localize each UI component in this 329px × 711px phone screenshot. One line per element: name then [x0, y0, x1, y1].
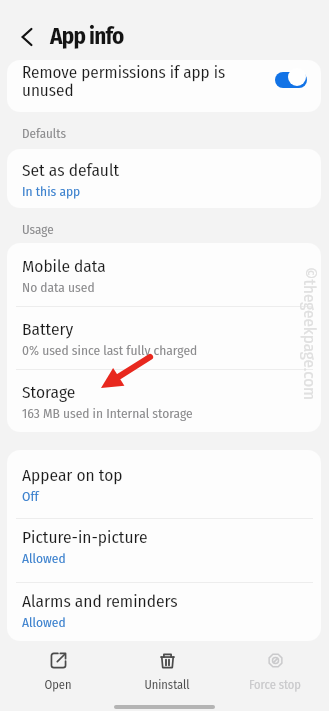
button[interactable]: Picture-in-picture: [22, 527, 302, 566]
staticText: Allowed: [22, 614, 66, 630]
staticText: Storage: [22, 382, 76, 403]
staticText: Usage: [22, 222, 54, 238]
button[interactable]: Mobile data: [22, 256, 302, 295]
staticText: Remove permissions if app is unused: [22, 62, 252, 101]
staticText: Defaults: [22, 126, 67, 142]
staticText: Appear on top: [22, 465, 123, 486]
staticText: Allowed: [22, 550, 66, 566]
button[interactable]: Battery: [22, 319, 302, 358]
staticText: ©thegeekpage.com: [300, 267, 320, 401]
button[interactable]: Alarms and reminders: [22, 591, 302, 630]
button[interactable]: Navigate up: [9, 19, 44, 54]
staticText: No data used: [22, 279, 95, 295]
button[interactable]: Set as default: [22, 160, 302, 199]
staticText: Battery: [22, 319, 74, 340]
staticText: 0% used since last fully charged: [22, 342, 198, 358]
staticText: Mobile data: [22, 256, 106, 277]
staticText: Picture-in-picture: [22, 527, 148, 548]
staticText: Uninstall: [117, 677, 217, 692]
staticText: Alarms and reminders: [22, 591, 178, 612]
button[interactable]: Uninstall: [117, 646, 217, 698]
button[interactable]: Force stop: [225, 646, 325, 698]
button[interactable]: Appear on top: [22, 465, 302, 504]
staticText: Off: [22, 488, 39, 504]
button[interactable]: Remove permissions if app is unused: [271, 67, 313, 93]
staticText: Force stop: [225, 677, 325, 692]
button[interactable]: Open: [8, 646, 108, 698]
staticText: App info: [50, 22, 124, 50]
staticText: In this app: [22, 183, 81, 199]
staticText: Set as default: [22, 160, 120, 181]
staticText: 163 MB used in Internal storage: [22, 405, 193, 421]
button[interactable]: Storage: [22, 382, 302, 421]
staticText: Open: [8, 677, 108, 692]
